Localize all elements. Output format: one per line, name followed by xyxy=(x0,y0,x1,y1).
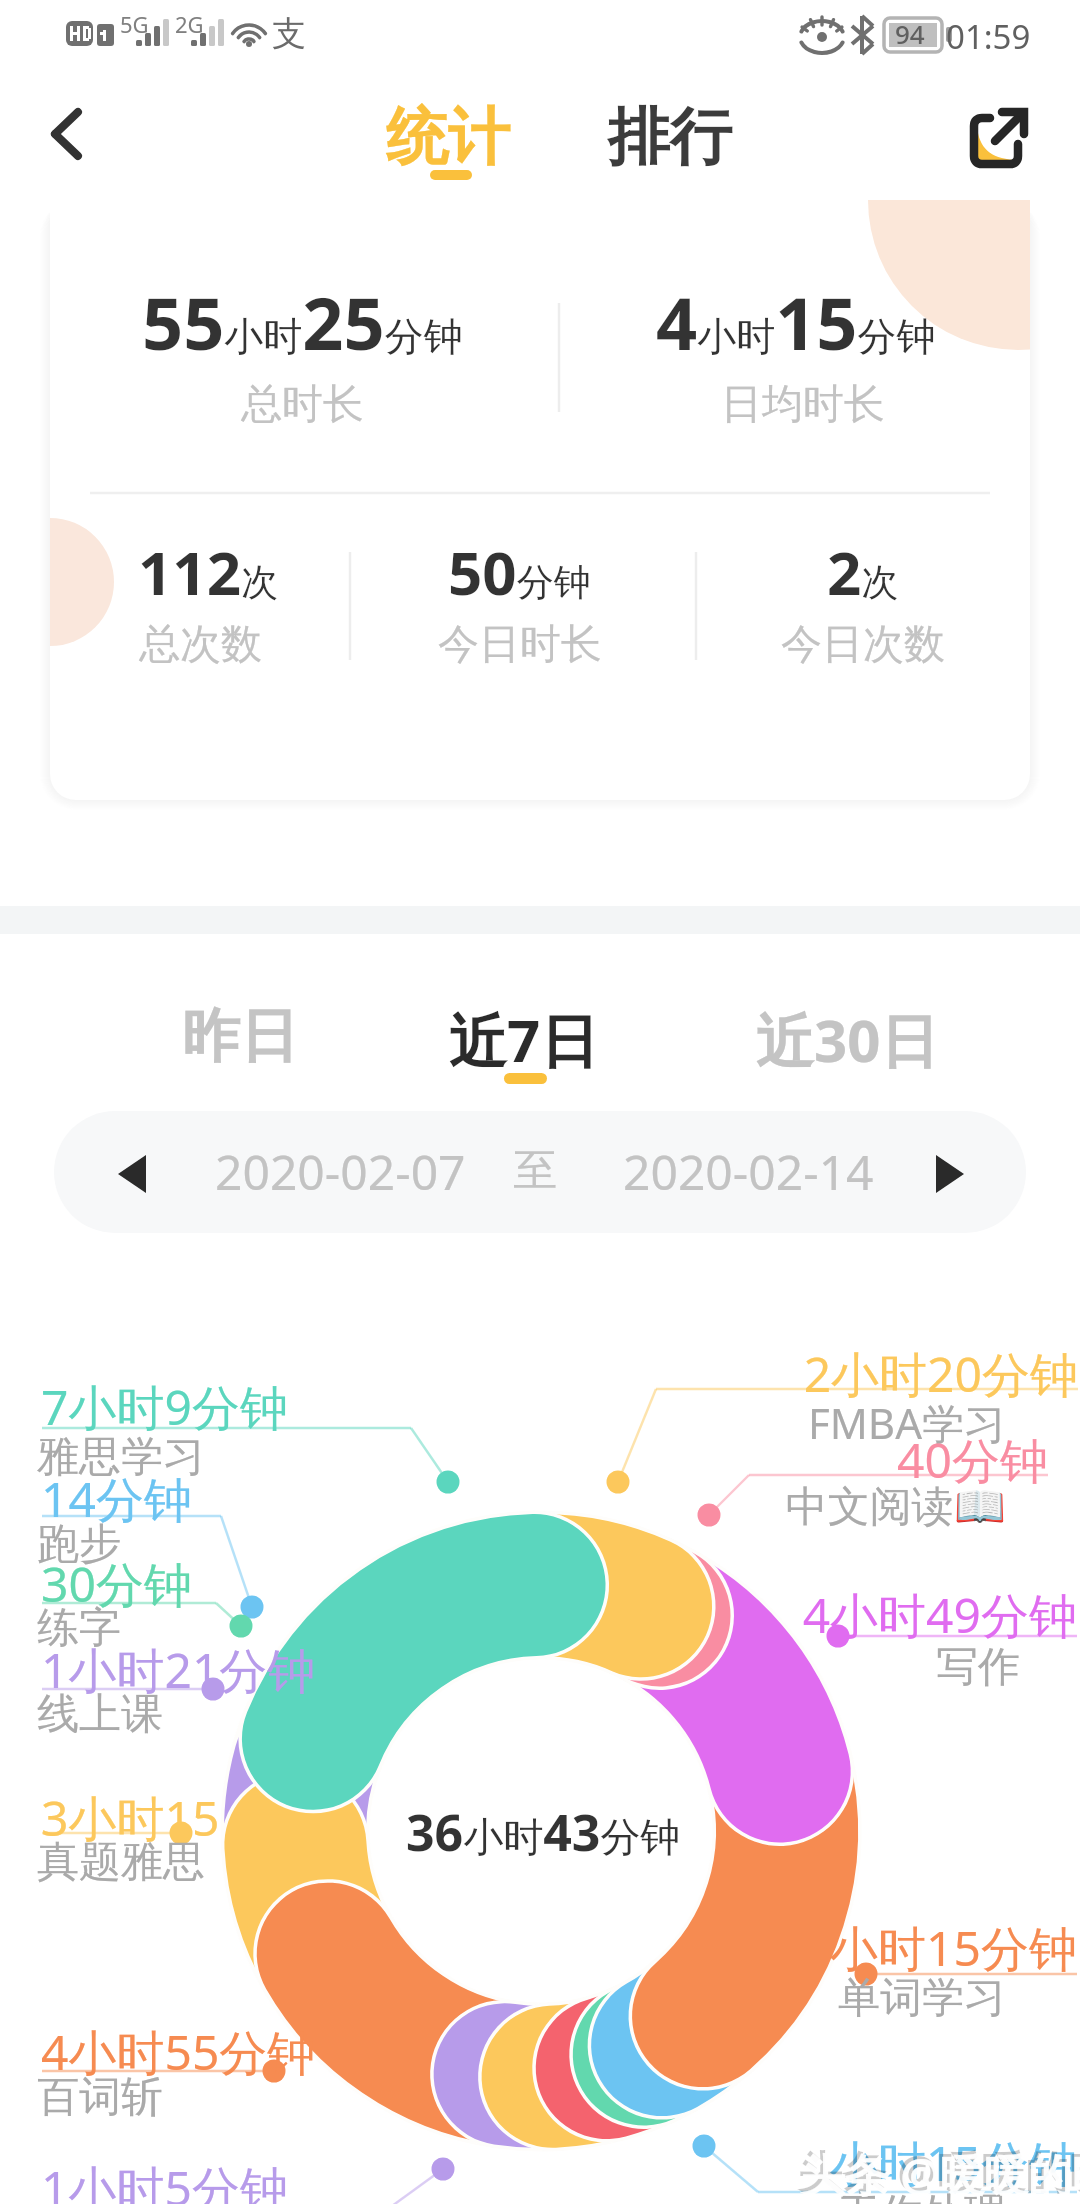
staticText: 7小时9分钟 xyxy=(41,1374,288,1440)
staticText: 支 xyxy=(272,12,306,55)
staticText: 总次数 xyxy=(139,619,262,671)
button[interactable]: Back xyxy=(24,96,110,176)
staticText: 5G xyxy=(120,9,149,39)
staticText: 小时15分钟 xyxy=(830,1915,1077,1981)
button[interactable] xyxy=(54,1111,1026,1233)
staticText: 排行 xyxy=(608,98,732,176)
button[interactable] xyxy=(378,88,524,188)
staticText: 40分钟 xyxy=(897,1427,1048,1493)
staticText: 30分钟 xyxy=(41,1551,192,1617)
staticText: 2020-02-07 xyxy=(215,1139,466,1204)
staticText: 总时长 xyxy=(241,379,364,431)
button[interactable] xyxy=(720,990,970,1090)
staticText: 写作 xyxy=(936,1641,1020,1694)
staticText: 36小时43分钟 xyxy=(406,1798,681,1866)
staticText: 昨日 xyxy=(182,1000,298,1073)
staticText: 近7日 xyxy=(449,1000,599,1079)
button[interactable]: Share xyxy=(950,96,1036,182)
staticText: 中文阅读📖 xyxy=(785,1481,1006,1534)
staticText: 今日时长 xyxy=(438,619,602,671)
staticText: 2G xyxy=(175,9,204,39)
button[interactable] xyxy=(600,88,746,188)
staticText: 练字 xyxy=(37,1602,121,1655)
staticText: 百词斩 xyxy=(37,2071,163,2124)
staticText: 至 xyxy=(513,1143,557,1198)
staticText: 4小时55分钟 xyxy=(41,2019,316,2085)
staticText: 今日次数 xyxy=(781,619,945,671)
staticText: 统计 xyxy=(386,98,510,176)
staticText: 小时15分钟 xyxy=(830,2130,1077,2196)
staticText: 真题雅思 xyxy=(37,1836,205,1889)
staticText: 01:59 xyxy=(946,14,1031,59)
staticText: 2次 xyxy=(827,531,899,613)
staticText: 头条 @暖暖的晓风姐 xyxy=(798,2141,1080,2201)
staticText: 112次 xyxy=(138,531,278,613)
staticText: 跑步 xyxy=(37,1518,121,1571)
staticText: 单词学习 xyxy=(838,1972,1006,2025)
staticText: 55小时25分钟 xyxy=(142,273,463,371)
staticText: 日均时长 xyxy=(721,379,885,431)
staticText: 近30日 xyxy=(756,1000,939,1079)
staticText: 2020-02-14 xyxy=(623,1139,874,1204)
staticText: 头条 @暖暖的晓风姐 xyxy=(801,2144,1080,2204)
staticText: 14分钟 xyxy=(41,1466,192,1532)
staticText: 1小时21分钟 xyxy=(41,1637,316,1703)
staticText: 94 xyxy=(895,16,925,51)
staticText: 3小时15 xyxy=(41,1785,220,1851)
staticText: 雅思学习 xyxy=(37,1431,205,1484)
staticText: 1小时5分钟 xyxy=(41,2155,288,2204)
staticText: 工作处理 xyxy=(838,2188,1006,2204)
staticText: FMBA学习 xyxy=(807,1394,1006,1451)
staticText: 线上课 xyxy=(37,1688,163,1741)
staticText: 2小时20分钟 xyxy=(803,1341,1078,1407)
staticText: 4小时15分钟 xyxy=(656,273,936,371)
button[interactable] xyxy=(120,990,350,1090)
button[interactable] xyxy=(420,990,650,1090)
staticText: 4小时49分钟 xyxy=(802,1582,1077,1648)
staticText: 50分钟 xyxy=(448,531,591,613)
